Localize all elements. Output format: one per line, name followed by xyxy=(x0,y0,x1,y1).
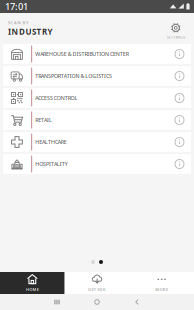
button[interactable]: HEALTHCARE xyxy=(3,132,191,152)
staticText: RETAIL xyxy=(35,116,52,124)
button[interactable]: TRANSPORTATION & LOGISTICS xyxy=(3,66,191,86)
staticText: GET SDK xyxy=(88,287,106,292)
button[interactable]: Back xyxy=(125,294,149,310)
button[interactable]: HOSPITALITY xyxy=(3,154,191,174)
button[interactable]: MORE xyxy=(129,272,194,294)
button[interactable]: Recents xyxy=(45,294,69,310)
button[interactable]: HOME xyxy=(0,272,65,294)
button[interactable]: Home xyxy=(85,294,109,310)
button[interactable]: GET SDK xyxy=(65,272,129,294)
button[interactable]: SETTINGS xyxy=(167,17,194,40)
staticText: WAREHOUSE & DISTRIBUTION CENTER xyxy=(35,50,129,58)
staticText: INDUSTRY xyxy=(8,26,52,37)
staticText: 17:01 xyxy=(5,0,28,13)
staticText: SCAN BY xyxy=(8,20,28,25)
staticText: SETTINGS xyxy=(167,34,185,40)
staticText: ACCESS CONTROL xyxy=(35,94,78,102)
button[interactable]: RETAIL xyxy=(3,110,191,130)
staticText: HEALTHCARE xyxy=(35,138,67,146)
staticText: MORE xyxy=(155,287,168,292)
staticText: TRANSPORTATION & LOGISTICS xyxy=(35,72,112,80)
staticText: HOSPITALITY xyxy=(35,160,68,168)
staticText: HOME xyxy=(26,287,39,292)
button[interactable]: ACCESS CONTROL xyxy=(3,88,191,108)
button[interactable]: WAREHOUSE & DISTRIBUTION CENTER xyxy=(3,44,191,64)
